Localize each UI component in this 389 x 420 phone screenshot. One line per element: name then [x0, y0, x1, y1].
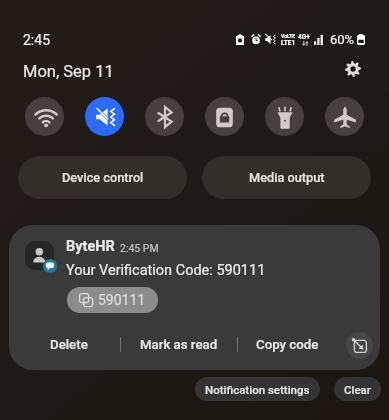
staticText: LTE1: [281, 39, 296, 47]
button[interactable]: Flashlight: [265, 97, 304, 136]
staticText: 590111: [98, 292, 146, 308]
staticText: Clear: [344, 383, 371, 396]
staticText: ByteHR: [66, 238, 115, 255]
button[interactable]: Bluetooth: [145, 97, 184, 136]
button[interactable]: 590111: [67, 287, 158, 313]
staticText: VoLTE: [281, 33, 296, 39]
staticText: Mon, Sep 11: [23, 62, 114, 81]
button[interactable]: Delete: [17, 327, 120, 363]
button[interactable]: Airplane mode: [325, 97, 364, 136]
staticText: Media output: [249, 170, 325, 185]
staticText: Notification settings: [205, 383, 310, 396]
button[interactable]: Wi-Fi: [25, 97, 64, 136]
staticText: Copy code: [256, 337, 319, 353]
staticText: 2:45: [23, 32, 50, 48]
staticText: Your Verification Code: 590111: [66, 262, 266, 279]
button[interactable]: Media output: [202, 156, 371, 199]
staticText: Mark as read: [140, 337, 218, 353]
staticText: 60%: [330, 32, 355, 47]
button[interactable]: Auto rotate: [205, 97, 244, 136]
staticText: Device control: [62, 170, 144, 185]
button[interactable]: Settings: [338, 54, 367, 83]
button[interactable]: Open in pop-up view: [346, 332, 373, 359]
button[interactable]: Device control: [18, 156, 187, 199]
staticText: 4G+: [298, 33, 310, 41]
staticText: Delete: [50, 337, 88, 353]
button[interactable]: Clear: [334, 377, 381, 401]
staticText: 2:45 PM: [120, 242, 159, 254]
button[interactable]: Notification settings: [195, 377, 320, 401]
button[interactable]: Copy code: [238, 327, 337, 363]
button[interactable]: Mark as read: [121, 327, 237, 363]
button[interactable]: Sound mode: [85, 97, 124, 136]
